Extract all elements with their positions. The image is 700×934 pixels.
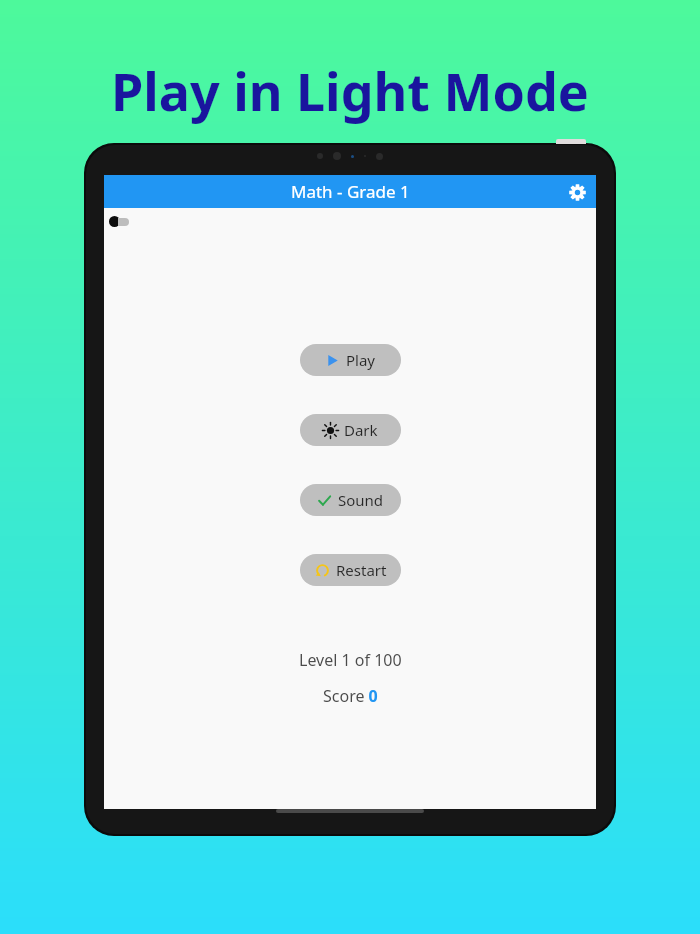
button[interactable]: Settings [563, 178, 591, 206]
button[interactable]: Sound [300, 484, 401, 516]
button[interactable]: Dark [300, 414, 401, 446]
button[interactable]: Play [300, 344, 401, 376]
staticText: Sound [338, 490, 384, 510]
staticText: Dark [344, 420, 378, 440]
staticText: Level 1 of 100 [299, 649, 402, 671]
staticText: Play [346, 350, 376, 370]
button[interactable]: Restart [300, 554, 401, 586]
staticText: Restart [336, 560, 387, 580]
staticText: Play in Light Mode [111, 55, 589, 126]
staticText: Math - Grade 1 [291, 180, 410, 203]
staticText: Score 0 [323, 685, 378, 707]
